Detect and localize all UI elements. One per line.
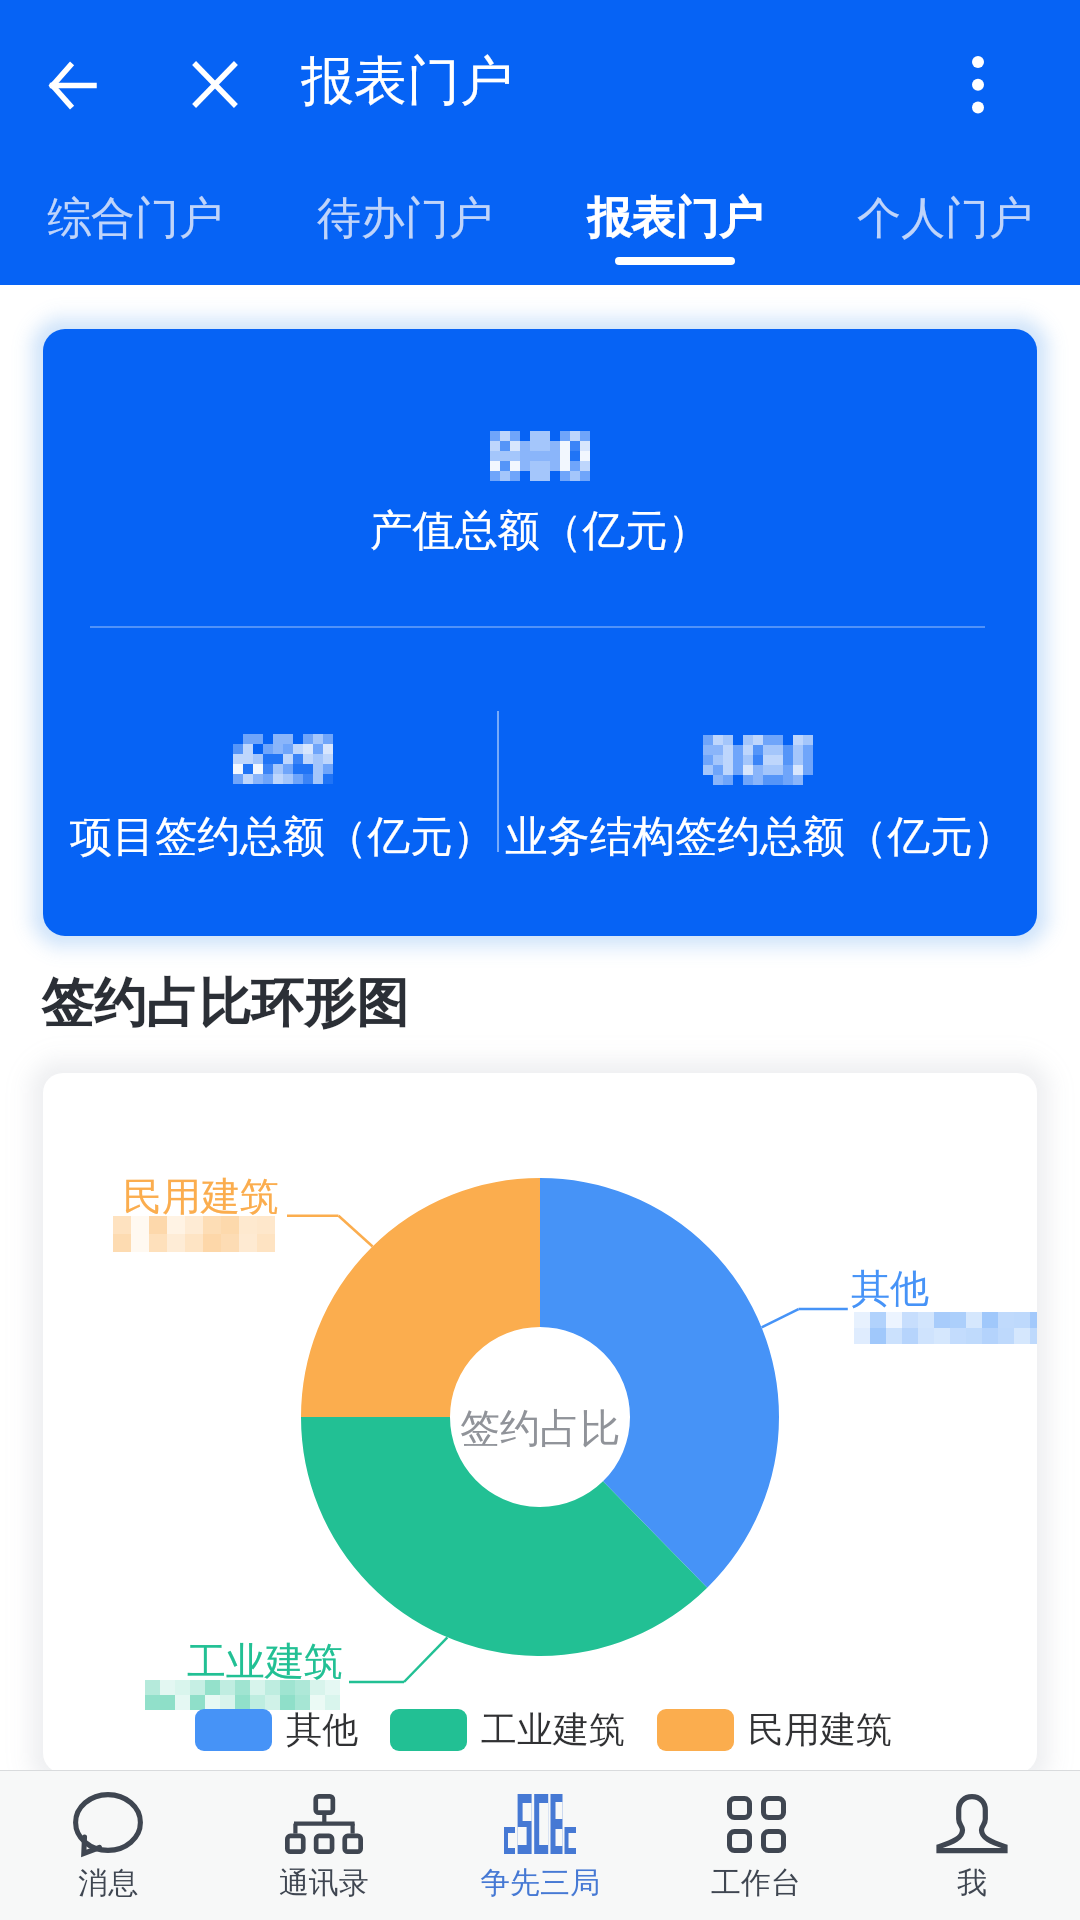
staticText: 项目签约总额（亿元）	[70, 810, 495, 864]
staticText: 民用建筑	[123, 1172, 279, 1221]
staticText: 综合门户	[47, 191, 223, 246]
button[interactable]: 个人门户	[810, 155, 1080, 285]
button[interactable]: 我	[864, 1771, 1080, 1920]
button[interactable]: 综合门户	[0, 155, 270, 285]
staticText: 报表门户	[301, 48, 513, 115]
staticText: 我	[957, 1864, 987, 1902]
staticText: 工作台	[711, 1864, 801, 1902]
button[interactable]: 通讯录	[216, 1771, 432, 1920]
button[interactable]: 待办门户	[270, 155, 540, 285]
button[interactable]: Close	[183, 52, 247, 116]
staticText: 其他	[286, 1707, 358, 1752]
staticText: 民用建筑	[748, 1707, 892, 1752]
button[interactable]: 工作台	[648, 1771, 864, 1920]
staticText: 报表门户	[587, 191, 763, 246]
staticText: 通讯录	[279, 1864, 369, 1902]
button[interactable]: 争先三局	[432, 1771, 648, 1920]
button[interactable]: 产值总额（亿元）	[43, 329, 1037, 936]
button[interactable]: 其他	[195, 1707, 358, 1752]
button[interactable]: 工业建筑	[390, 1707, 625, 1752]
staticText: 产值总额（亿元）	[370, 504, 710, 558]
staticText: 争先三局	[480, 1864, 600, 1902]
button[interactable]: 消息	[0, 1771, 216, 1920]
staticText: 签约占比环形图	[41, 970, 409, 1036]
staticText: 业务结构签约总额（亿元）	[505, 810, 1015, 864]
staticText: 工业建筑	[481, 1707, 625, 1752]
staticText: 消息	[78, 1864, 138, 1902]
button[interactable]: 民用建筑	[657, 1707, 892, 1752]
staticText: 待办门户	[317, 191, 493, 246]
staticText: 个人门户	[857, 191, 1033, 246]
button[interactable]: 报表门户	[540, 155, 810, 285]
staticText: 其他	[851, 1264, 929, 1313]
staticText: 签约占比	[460, 1403, 620, 1453]
button[interactable]: Back	[40, 53, 104, 117]
staticText: 工业建筑	[187, 1637, 343, 1686]
button[interactable]: More options	[946, 53, 1010, 117]
